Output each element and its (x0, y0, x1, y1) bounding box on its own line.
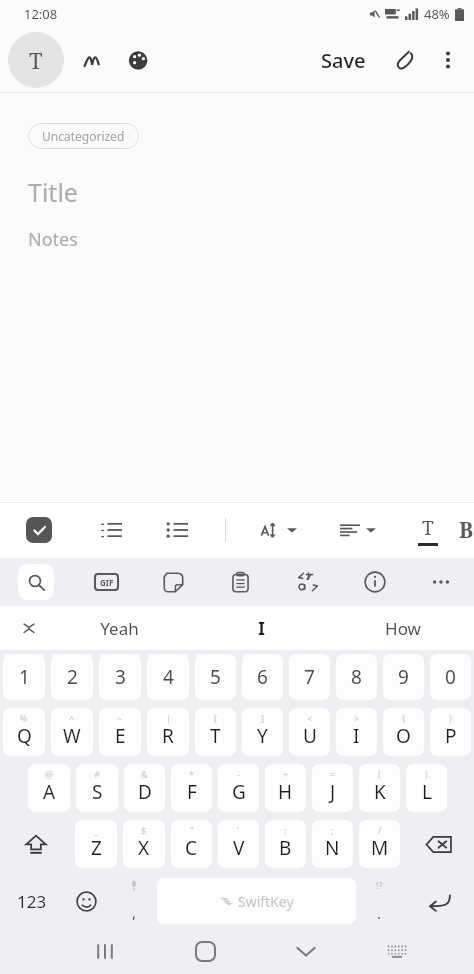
button[interactable]: < (289, 708, 330, 756)
button[interactable]: ^ (51, 708, 93, 756)
button[interactable]: 3 (99, 654, 141, 700)
button[interactable]: [ (195, 708, 236, 756)
button[interactable]: = (312, 764, 353, 812)
button[interactable]: % (3, 708, 45, 756)
button[interactable]: Recents (57, 928, 153, 974)
staticText: { (402, 712, 406, 724)
button[interactable]: + (265, 764, 306, 812)
staticText: > (354, 712, 360, 724)
button[interactable]: * (171, 764, 212, 812)
staticText: R (162, 723, 174, 749)
button[interactable]: Uncategorized (28, 123, 139, 149)
button[interactable]: ) (406, 764, 447, 812)
button[interactable]: ~ (99, 708, 141, 756)
button[interactable]: Search (0, 558, 72, 606)
button[interactable]: 5 (195, 654, 236, 700)
button[interactable]: Backspace (403, 819, 474, 869)
button[interactable]: Text mode (8, 32, 64, 88)
button[interactable]: @ (28, 764, 70, 812)
button[interactable]: Enter (403, 875, 474, 927)
button[interactable]: Save (313, 41, 374, 80)
button[interactable]: Clipboard (207, 558, 274, 606)
button[interactable]: $ (123, 820, 165, 868)
button[interactable]: Alignment (318, 502, 398, 558)
staticText: O (396, 723, 411, 749)
staticText: T (210, 723, 221, 749)
staticText: 4 (163, 664, 174, 690)
button[interactable]: Keyboard settings (354, 928, 440, 974)
button[interactable]: Comma and voice input (110, 875, 157, 927)
button[interactable]: _ (75, 820, 117, 868)
staticText: ; (331, 824, 334, 836)
button[interactable]: Translate (274, 558, 341, 606)
button[interactable]: GIF (72, 558, 140, 606)
button[interactable]: Stickers (140, 558, 207, 606)
button[interactable]: Collapse (12, 611, 46, 645)
button[interactable]: ; (312, 820, 353, 868)
button[interactable]: Yeah (48, 606, 190, 650)
button[interactable]: More (408, 558, 474, 606)
button[interactable]: ' (218, 820, 259, 868)
button[interactable]: 123 (0, 875, 63, 927)
staticText: Title (28, 175, 78, 209)
staticText: ' (237, 824, 240, 836)
button[interactable]: 2 (51, 654, 93, 700)
button[interactable]: > (336, 708, 377, 756)
button[interactable]: 0 (430, 654, 471, 700)
button[interactable]: 4 (147, 654, 189, 700)
button[interactable]: Text color (398, 502, 458, 558)
button[interactable]: : (265, 820, 306, 868)
staticText: Notes (28, 227, 78, 252)
button[interactable]: Palette (116, 37, 162, 83)
button[interactable]: Bold (458, 502, 474, 558)
button[interactable]: More options (428, 40, 468, 80)
staticText: # (94, 768, 100, 780)
button[interactable]: Info (341, 558, 408, 606)
staticText: 8 (351, 664, 362, 690)
staticText: U (303, 723, 317, 749)
button[interactable]: } (430, 708, 471, 756)
button[interactable]: ( (359, 764, 400, 812)
button[interactable]: " (171, 820, 212, 868)
button[interactable]: Text size (240, 502, 318, 558)
button[interactable]: Emoji (63, 875, 110, 927)
staticText: A (43, 779, 56, 805)
staticText: J (330, 779, 336, 805)
button[interactable]: & (124, 764, 165, 812)
staticText: Yeah (100, 617, 139, 640)
button[interactable]: How (332, 606, 474, 650)
staticText: & (141, 768, 148, 780)
button[interactable]: Bulleted list (144, 502, 210, 558)
button[interactable]: 9 (383, 654, 424, 700)
button[interactable]: Numbered list (78, 502, 144, 558)
staticText: N (325, 835, 340, 861)
button[interactable]: { (383, 708, 424, 756)
staticText: 123 (17, 890, 47, 913)
staticText: Save (321, 47, 366, 74)
staticText: G (232, 779, 246, 805)
button[interactable]: Checklist (0, 502, 78, 558)
button[interactable]: Back (258, 928, 354, 974)
button[interactable]: 1 (3, 654, 45, 700)
staticText: % (20, 712, 28, 724)
button[interactable]: | (147, 708, 189, 756)
button[interactable]: - (218, 764, 259, 812)
staticText: = (330, 768, 336, 780)
button[interactable]: 6 (242, 654, 283, 700)
button[interactable]: Attach (384, 38, 428, 82)
button[interactable]: # (76, 764, 118, 812)
button[interactable]: I (190, 606, 332, 650)
button[interactable]: Shift (0, 819, 72, 869)
button[interactable]: ] (242, 708, 283, 756)
button[interactable]: 7 (289, 654, 330, 700)
staticText: 1 (19, 664, 30, 690)
button[interactable]: Period (356, 875, 403, 927)
button[interactable]: 8 (336, 654, 377, 700)
staticText: 12:08 (24, 5, 58, 23)
button[interactable]: Space (157, 878, 356, 924)
staticText: !? (376, 879, 383, 891)
button[interactable]: Home (153, 928, 258, 974)
button[interactable]: / (359, 820, 400, 868)
button[interactable]: Draw (70, 37, 116, 83)
staticText: X (138, 835, 150, 861)
